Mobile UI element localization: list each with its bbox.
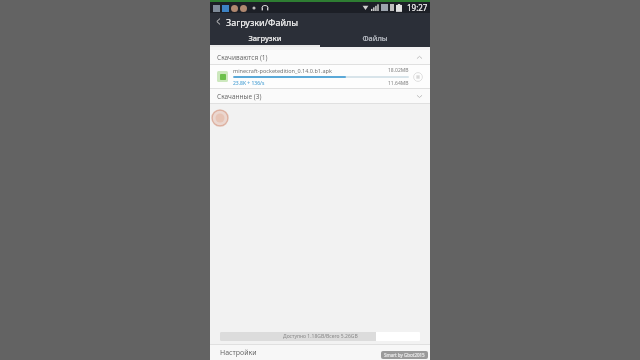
staticText: Загрузки/Файлы <box>226 16 299 28</box>
button[interactable]: Загрузки <box>210 30 320 45</box>
button[interactable]: Скачиваются (1) <box>210 50 430 64</box>
button[interactable]: Настройки <box>220 348 257 358</box>
staticText: Загрузки <box>248 33 282 43</box>
button[interactable]: Файлы <box>320 30 430 45</box>
staticText: Скачиваются (1) <box>217 53 416 62</box>
staticText: 23.8K + 136/s <box>233 80 388 87</box>
button[interactable]: Скачанные (3) <box>210 89 430 103</box>
staticText: Доступно 1.18GB/Всего 5.26GB <box>283 333 358 340</box>
button[interactable]: Доступно 1.18GB/Всего 5.26GB <box>220 332 420 341</box>
staticText: Скачанные (3) <box>217 92 416 101</box>
staticText: minecraft-pocketedition_0.14.0.b1.apk <box>233 67 388 74</box>
button[interactable]: minecraft-pocketedition_0.14.0.b1.apk <box>210 65 430 88</box>
button[interactable]: Назад <box>210 13 226 30</box>
button[interactable]: Пауза <box>413 72 423 82</box>
staticText: Smart by Gbot2015 <box>384 352 425 358</box>
staticText: Файлы <box>362 33 388 43</box>
staticText: Настройки <box>220 348 257 358</box>
staticText: 18.02MB <box>388 67 409 74</box>
staticText: 11.64MB <box>388 80 409 87</box>
staticText: 19:27 <box>407 2 428 13</box>
